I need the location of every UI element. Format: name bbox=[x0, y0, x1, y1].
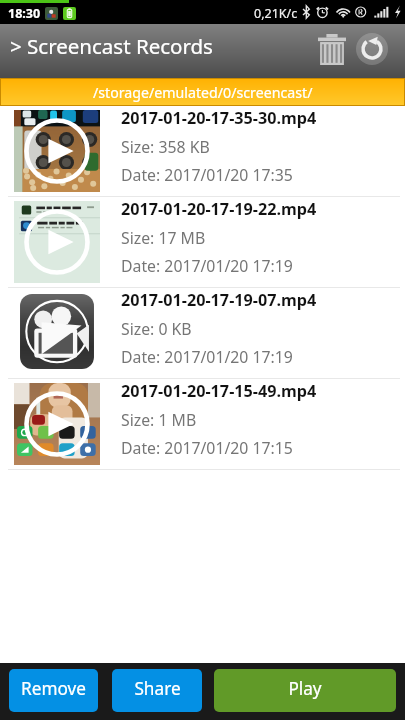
staticText: Date: 2017/01/20 17:15 bbox=[121, 437, 293, 459]
staticText: Size: 358 KB bbox=[121, 136, 210, 158]
staticText: 2017-01-20-17-15-49.mp4 bbox=[121, 380, 317, 402]
staticText: Size: 1 MB bbox=[121, 409, 197, 431]
button[interactable]: 2017-01-20-17-19-07.mp4 bbox=[0, 288, 405, 379]
staticText: 2017-01-20-17-19-22.mp4 bbox=[121, 198, 317, 220]
staticText: Play bbox=[288, 677, 322, 700]
button[interactable]: Share bbox=[112, 669, 202, 712]
staticText: Date: 2017/01/20 17:19 bbox=[121, 255, 293, 277]
staticText: Share bbox=[134, 677, 181, 700]
staticText: 2017-01-20-17-19-07.mp4 bbox=[121, 289, 317, 311]
button[interactable]: 2017-01-20-17-15-49.mp4 bbox=[0, 379, 405, 470]
button[interactable]: Remove bbox=[9, 669, 98, 712]
button[interactable]: 2017-01-20-17-35-30.mp4 bbox=[0, 106, 405, 197]
staticText: Date: 2017/01/20 17:19 bbox=[121, 346, 293, 368]
staticText: Size: 0 KB bbox=[121, 318, 192, 340]
staticText: 0,21K/c bbox=[254, 5, 298, 22]
button[interactable]: Delete bbox=[310, 24, 350, 78]
staticText: Remove bbox=[21, 677, 86, 700]
staticText: 18:30 bbox=[8, 5, 41, 22]
button[interactable]: Play bbox=[214, 669, 396, 712]
button[interactable]: 2017-01-20-17-19-22.mp4 bbox=[0, 197, 405, 288]
staticText: Date: 2017/01/20 17:35 bbox=[121, 164, 293, 186]
staticText: > Screencast Records bbox=[10, 32, 213, 60]
staticText: Size: 17 MB bbox=[121, 227, 206, 249]
staticText: 2017-01-20-17-35-30.mp4 bbox=[121, 107, 317, 129]
button[interactable]: Refresh bbox=[350, 24, 394, 78]
staticText: /storage/emulated/0/screencast/ bbox=[93, 83, 313, 102]
